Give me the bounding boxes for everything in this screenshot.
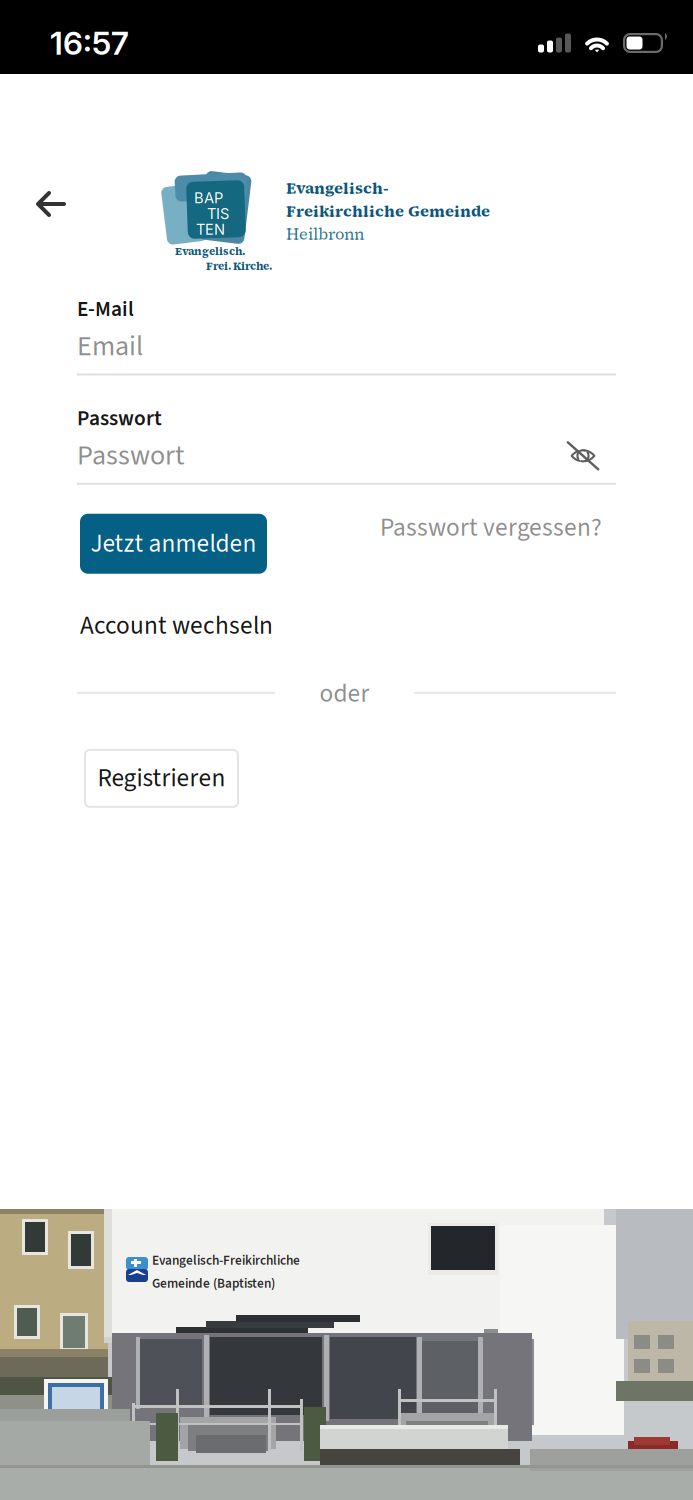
staticText: Frei. Kirche. [206, 259, 272, 273]
staticText: Passwort [77, 436, 184, 476]
staticText: 16:57 [50, 24, 129, 62]
button[interactable]: Show password [566, 441, 600, 471]
button[interactable]: Account wechseln [80, 608, 273, 644]
button[interactable]: Passwort vergessen? [380, 510, 602, 546]
staticText: TIS [207, 205, 229, 222]
staticText: TEN [196, 220, 225, 238]
staticText: oder [319, 676, 369, 712]
staticText: BAP [194, 189, 223, 207]
button[interactable]: Back [25, 178, 77, 230]
staticText: Evangelisch. [175, 244, 245, 259]
staticText: Jetzt anmelden [90, 526, 256, 562]
staticText: Freikirchliche Gemeinde [286, 200, 490, 222]
button[interactable]: Jetzt anmelden [80, 514, 267, 574]
button[interactable]: Registrieren [84, 749, 239, 808]
staticText: Registrieren [97, 760, 225, 796]
staticText: Evangelisch- [286, 177, 389, 199]
staticText: E-Mail [77, 294, 134, 325]
staticText: Passwort [77, 403, 162, 434]
staticText: Account wechseln [80, 608, 273, 644]
staticText: Gemeinde (Baptisten) [152, 1274, 275, 1293]
staticText: Passwort vergessen? [380, 510, 602, 546]
staticText: Heilbronn [286, 223, 364, 245]
staticText: Evangelisch-Freikirchliche [152, 1251, 300, 1270]
staticText: Email [77, 327, 143, 366]
